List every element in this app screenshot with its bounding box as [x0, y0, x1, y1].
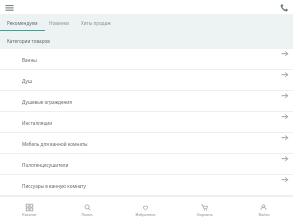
- button[interactable]: Избранное: [116, 197, 175, 220]
- button[interactable]: Полотенцесушители: [0, 154, 293, 175]
- button[interactable]: Инсталляции: [0, 112, 293, 133]
- staticText: Категории товаров: [7, 38, 50, 44]
- staticText: Корзина: [197, 212, 213, 217]
- staticText: Рекомендуем: [7, 20, 38, 26]
- button[interactable]: Войти: [234, 197, 293, 220]
- staticText: Избранное: [135, 212, 156, 217]
- staticText: Мебель для ванной комнаты: [22, 141, 88, 147]
- button[interactable]: Рекомендуем: [0, 14, 45, 31]
- button[interactable]: Menu: [3, 2, 16, 15]
- staticText: Ванны: [22, 57, 37, 63]
- button[interactable]: Писсуары в ванную комнату: [0, 175, 293, 196]
- staticText: Хиты продаж: [81, 20, 111, 26]
- staticText: Инсталляции: [22, 120, 53, 126]
- button[interactable]: Каталог: [0, 197, 58, 220]
- button[interactable]: Поиск: [58, 197, 116, 220]
- button[interactable]: Душевые ограждения: [0, 91, 293, 112]
- button[interactable]: Ванны: [0, 49, 293, 70]
- button[interactable]: Душ: [0, 70, 293, 91]
- staticText: Душ: [22, 78, 33, 84]
- button[interactable]: Новинки: [45, 14, 73, 31]
- staticText: Полотенцесушители: [22, 162, 69, 168]
- staticText: Новинки: [49, 20, 69, 26]
- staticText: Душевые ограждения: [22, 99, 72, 105]
- button[interactable]: Корзина: [175, 197, 234, 220]
- staticText: Писсуары в ванную комнату: [22, 183, 86, 189]
- staticText: Войти: [258, 212, 270, 217]
- button[interactable]: Хиты продаж: [73, 14, 119, 31]
- button[interactable]: Call: [280, 3, 289, 12]
- staticText: Поиск: [81, 212, 93, 217]
- button[interactable]: Мебель для ванной комнаты: [0, 133, 293, 154]
- staticText: Каталог: [22, 212, 37, 217]
